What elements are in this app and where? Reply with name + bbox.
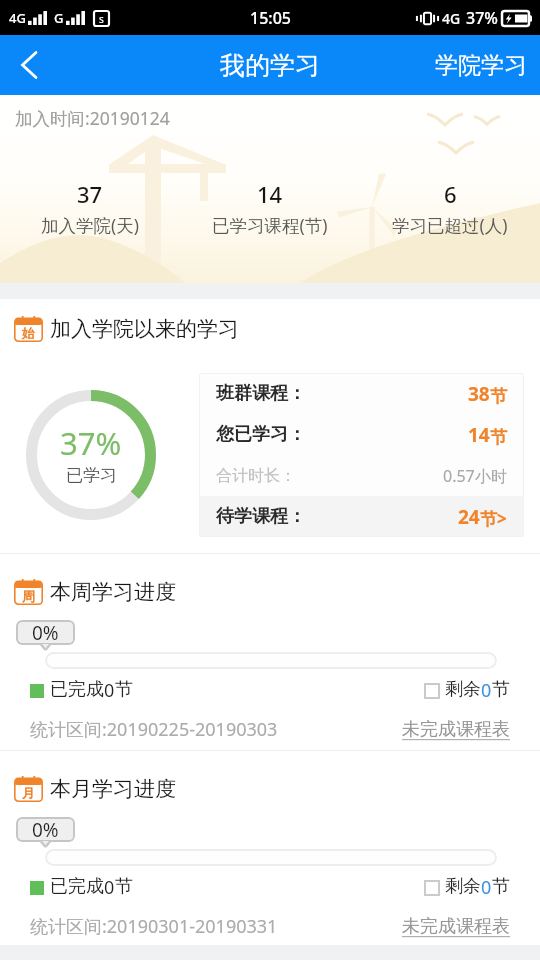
staticText: 4G: [9, 9, 26, 27]
staticText: 节: [490, 427, 507, 448]
staticText: 已完成: [50, 678, 104, 701]
staticText: 24: [458, 504, 480, 530]
staticText: 小时: [475, 467, 507, 487]
staticText: 周: [22, 588, 35, 604]
staticText: 未完成课程表: [402, 915, 510, 938]
staticText: s: [99, 12, 104, 26]
button[interactable]: 合计时长：: [199, 455, 524, 496]
staticText: 0: [481, 875, 492, 900]
staticText: 37: [77, 179, 103, 209]
staticText: 已学习: [66, 465, 117, 486]
staticText: 待学课程：: [216, 505, 306, 528]
staticText: 38: [468, 381, 490, 407]
staticText: 本月学习进度: [50, 776, 176, 802]
staticText: 统计区间:20190225-20190303: [30, 717, 278, 742]
staticText: 6: [444, 179, 457, 209]
staticText: 加入学院(天): [41, 213, 139, 237]
staticText: 始: [22, 325, 35, 341]
staticText: 已学习课程(节): [212, 213, 328, 237]
button[interactable]: 未完成课程表: [402, 718, 510, 741]
staticText: 我的学习: [220, 50, 320, 81]
staticText: 0.57: [443, 465, 475, 487]
staticText: 0: [104, 875, 115, 900]
staticText: 37%: [60, 422, 122, 464]
staticText: 本周学习进度: [50, 579, 176, 605]
staticText: 加入时间:20190124: [15, 106, 170, 130]
button[interactable]: 待学课程：: [199, 496, 524, 537]
staticText: 月: [22, 785, 35, 801]
button[interactable]: Back: [0, 35, 58, 95]
staticText: 您已学习：: [216, 423, 306, 446]
staticText: 学习已超过(人): [392, 213, 508, 237]
staticText: 加入学院以来的学习: [50, 316, 239, 342]
staticText: 0: [104, 678, 115, 703]
staticText: 节>: [480, 507, 507, 530]
staticText: 15:05: [250, 7, 291, 29]
staticText: 0: [481, 678, 492, 703]
staticText: 已完成: [50, 875, 104, 898]
staticText: 剩余: [445, 875, 481, 898]
staticText: 14: [468, 422, 490, 448]
staticText: 合计时长：: [216, 466, 296, 486]
staticText: G: [54, 9, 64, 27]
staticText: 节: [492, 875, 510, 898]
staticText: 0%: [32, 817, 59, 842]
button[interactable]: 未完成课程表: [402, 915, 510, 938]
staticText: 0%: [32, 620, 59, 645]
button[interactable]: 学院学习: [421, 35, 540, 95]
staticText: 节: [490, 386, 507, 407]
staticText: 学院学习: [435, 51, 527, 80]
staticText: 37%: [466, 7, 498, 29]
staticText: 14: [257, 179, 283, 209]
staticText: 节: [492, 678, 510, 701]
staticText: 节: [115, 678, 133, 701]
staticText: 节: [115, 875, 133, 898]
staticText: 剩余: [445, 678, 481, 701]
button[interactable]: 班群课程：: [199, 373, 524, 414]
staticText: 班群课程：: [216, 382, 306, 405]
staticText: 未完成课程表: [402, 718, 510, 741]
staticText: 4G: [442, 9, 461, 28]
button[interactable]: 您已学习：: [199, 414, 524, 455]
staticText: 统计区间:20190301-20190331: [30, 914, 278, 939]
